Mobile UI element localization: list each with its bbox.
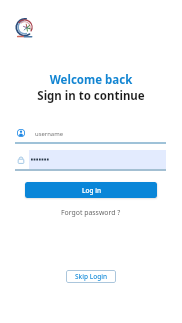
button[interactable]	[15, 150, 166, 171]
staticText: Forgot password ?	[61, 208, 121, 217]
button[interactable]: Log in	[25, 182, 157, 198]
staticText: username	[35, 130, 63, 138]
staticText: Sign in to continue	[0, 88, 182, 104]
staticText: Skip Login	[75, 272, 107, 281]
other: App logo	[15, 18, 36, 39]
button[interactable]: Forgot password ?	[55, 205, 127, 220]
staticText: Welcome back	[0, 72, 182, 88]
button[interactable]: username	[15, 126, 166, 144]
staticText: Log in	[82, 186, 101, 195]
button[interactable]: Skip Login	[66, 270, 116, 283]
